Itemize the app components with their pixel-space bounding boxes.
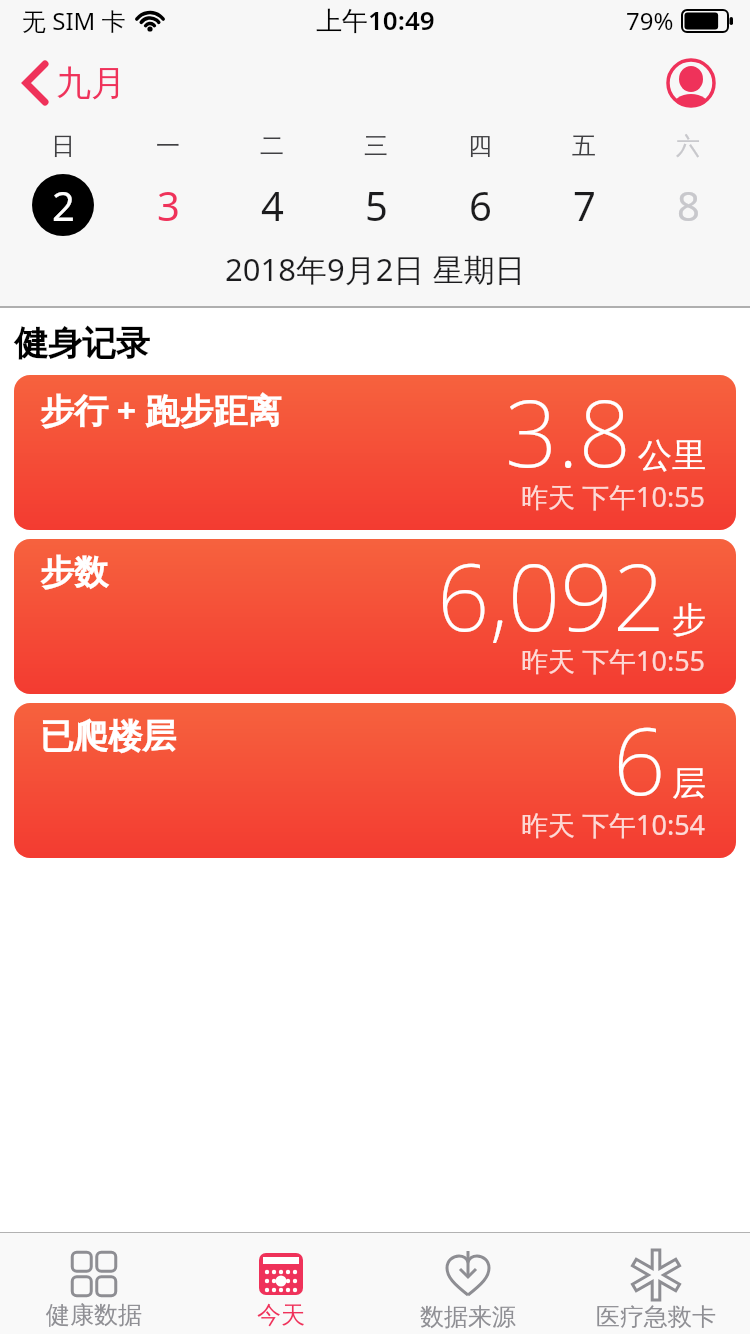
staticText: 二 [260,131,284,161]
staticText: 2 [52,178,75,232]
staticText: 3.8 [505,375,632,494]
staticText: 公里 [638,434,706,477]
staticText: 昨天 下午10:55 [521,642,706,679]
button[interactable]: 步行 + 跑步距离 [14,375,736,530]
staticText: 6 [469,178,492,232]
staticText: 79% [626,4,674,37]
button[interactable]: 已爬楼层 [14,703,736,858]
button[interactable]: 2 [32,174,94,236]
staticText: 五 [572,131,596,161]
button[interactable]: 7 [553,174,615,236]
button[interactable]: 3 [137,174,199,236]
staticText: 日 [51,131,75,161]
staticText: 3 [157,178,180,232]
button[interactable]: 数据来源 [374,1233,562,1334]
staticText: 层 [672,762,706,805]
button[interactable]: 5 [345,174,407,236]
staticText: 8 [677,178,700,232]
staticText: 上午10:49 [316,2,435,38]
staticText: 步数 [40,551,108,594]
staticText: 九月 [56,61,126,105]
staticText: 今天 [257,1300,305,1330]
staticText: 步行 + 跑步距离 [40,387,282,433]
staticText: 2018年9月2日 星期日 [225,248,526,290]
button[interactable]: 8 [657,174,719,236]
staticText: 无 SIM 卡 [22,4,126,37]
staticText: 6,092 [437,539,666,658]
staticText: 健康数据 [46,1300,142,1330]
staticText: 7 [573,178,596,232]
staticText: 四 [468,131,492,161]
staticText: 昨天 下午10:54 [521,806,706,843]
button[interactable] [666,58,716,108]
staticText: 4 [261,178,284,232]
staticText: 三 [364,131,388,161]
staticText: 六 [676,131,700,161]
staticText: 已爬楼层 [40,715,176,758]
staticText: 昨天 下午10:55 [521,478,706,515]
button[interactable]: 健康数据 [0,1233,187,1334]
button[interactable]: 九月 [22,60,126,106]
button[interactable]: 医疗急救卡 [562,1233,750,1334]
staticText: 5 [365,178,388,232]
button[interactable]: 今天 [187,1233,374,1334]
staticText: 6 [613,703,666,822]
button[interactable]: 4 [241,174,303,236]
staticText: 数据来源 [420,1302,516,1332]
button[interactable]: 步数 [14,539,736,694]
staticText: 步 [672,598,706,641]
button[interactable]: 6 [449,174,511,236]
staticText: 一 [156,131,180,161]
staticText: 医疗急救卡 [596,1302,716,1332]
staticText: 健身记录 [14,322,150,365]
